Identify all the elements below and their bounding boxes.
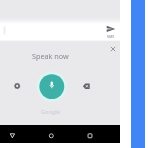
button[interactable]: Close [107,43,120,56]
staticText: SMS [107,34,115,39]
staticText: Speak now [32,51,69,61]
button[interactable]: Back [3,125,21,143]
button[interactable]: Recent apps [81,125,99,143]
button[interactable]: Send SMS [102,21,120,40]
button[interactable]: Settings [11,80,23,92]
button[interactable]: Backspace [79,80,92,93]
button[interactable]: Microphone [36,71,68,103]
button[interactable]: Home [42,125,60,143]
staticText: Google [41,108,60,116]
